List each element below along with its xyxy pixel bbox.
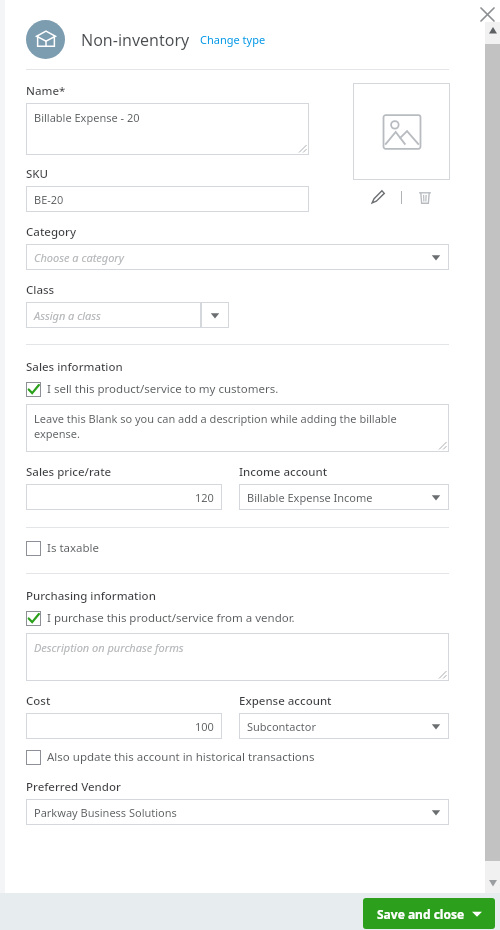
button[interactable]: Parkway Business Solutions xyxy=(26,799,449,825)
staticText: Is taxable xyxy=(47,540,100,556)
button[interactable]: I sell this product/service to my custom… xyxy=(26,381,279,397)
staticText: I sell this product/service to my custom… xyxy=(47,381,279,397)
staticText: Subcontactor xyxy=(247,719,316,734)
staticText: Expense account xyxy=(239,693,332,709)
staticText: I purchase this product/service from a v… xyxy=(47,610,295,626)
button[interactable]: Is taxable xyxy=(26,540,100,556)
button[interactable]: Save and close xyxy=(363,898,495,929)
staticText: Save and close xyxy=(377,906,465,922)
staticText: Leave this Blank so you can add a descri… xyxy=(34,411,397,441)
button[interactable]: Description on purchase forms xyxy=(26,633,449,681)
staticText: Sales price/rate xyxy=(26,464,112,480)
button[interactable]: 100 xyxy=(26,713,222,739)
staticText: Non-inventory xyxy=(81,29,190,51)
staticText: Name* xyxy=(26,83,66,99)
staticText: Category xyxy=(26,224,76,240)
button[interactable]: Billable Expense Income xyxy=(239,484,449,510)
staticText: 120 xyxy=(195,490,214,505)
button[interactable]: Subcontactor xyxy=(239,713,449,739)
staticText: Sales information xyxy=(26,359,123,375)
button[interactable]: I purchase this product/service from a v… xyxy=(26,610,295,626)
staticText: Income account xyxy=(239,464,328,480)
staticText: Cost xyxy=(26,693,51,709)
staticText: Class xyxy=(26,282,55,298)
button[interactable]: Edit image xyxy=(367,186,389,208)
staticText: Assign a class xyxy=(34,308,101,323)
button[interactable]: Assign a class xyxy=(26,302,201,328)
staticText: Billable Expense Income xyxy=(247,490,373,505)
staticText: Choose a category xyxy=(34,250,124,265)
staticText: Preferred Vendor xyxy=(26,779,121,795)
staticText: Billable Expense - 20 xyxy=(34,110,140,125)
staticText: Description on purchase forms xyxy=(34,640,184,655)
button[interactable]: Product image xyxy=(353,83,450,180)
staticText: Parkway Business Solutions xyxy=(34,805,177,820)
button[interactable]: Close xyxy=(477,4,498,25)
staticText: SKU xyxy=(26,166,49,182)
button[interactable]: Leave this Blank so you can add a descri… xyxy=(26,404,449,452)
button[interactable]: BE-20 xyxy=(26,186,309,212)
button[interactable]: Delete image xyxy=(414,186,436,208)
button[interactable]: Choose a category xyxy=(26,244,449,270)
staticText: BE-20 xyxy=(34,192,64,207)
button[interactable]: 120 xyxy=(26,484,222,510)
button[interactable]: Change type xyxy=(200,32,266,47)
button[interactable]: Also update this account in historical t… xyxy=(26,749,315,765)
staticText: 100 xyxy=(195,719,214,734)
staticText: Also update this account in historical t… xyxy=(47,749,315,765)
staticText: Purchasing information xyxy=(26,588,156,604)
button[interactable]: Billable Expense - 20 xyxy=(26,103,309,155)
button[interactable]: Class dropdown xyxy=(201,302,229,328)
